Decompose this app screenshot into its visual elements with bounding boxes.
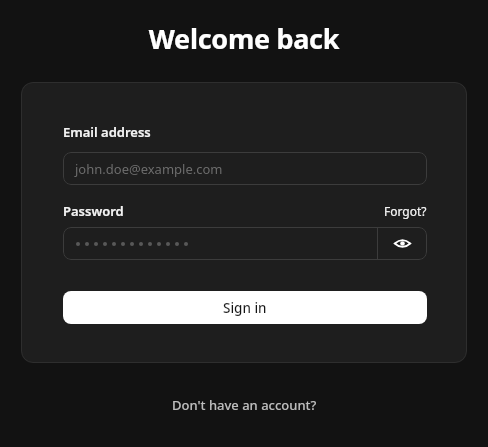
- staticText: Welcome back: [0, 20, 488, 57]
- button[interactable]: Forgot?: [384, 203, 427, 219]
- button[interactable]: Show password: [378, 227, 427, 260]
- staticText: Sign in: [223, 299, 267, 317]
- staticText: Email address: [63, 123, 151, 141]
- button[interactable]: john.doe@example.com: [63, 152, 427, 185]
- staticText: john.doe@example.com: [75, 160, 223, 178]
- staticText: Forgot?: [384, 203, 427, 219]
- button[interactable]: Don't have an account?: [172, 396, 317, 414]
- button[interactable]: Sign in: [63, 291, 427, 324]
- button[interactable]: [63, 227, 377, 260]
- staticText: Don't have an account?: [172, 396, 317, 414]
- staticText: Password: [63, 202, 124, 220]
